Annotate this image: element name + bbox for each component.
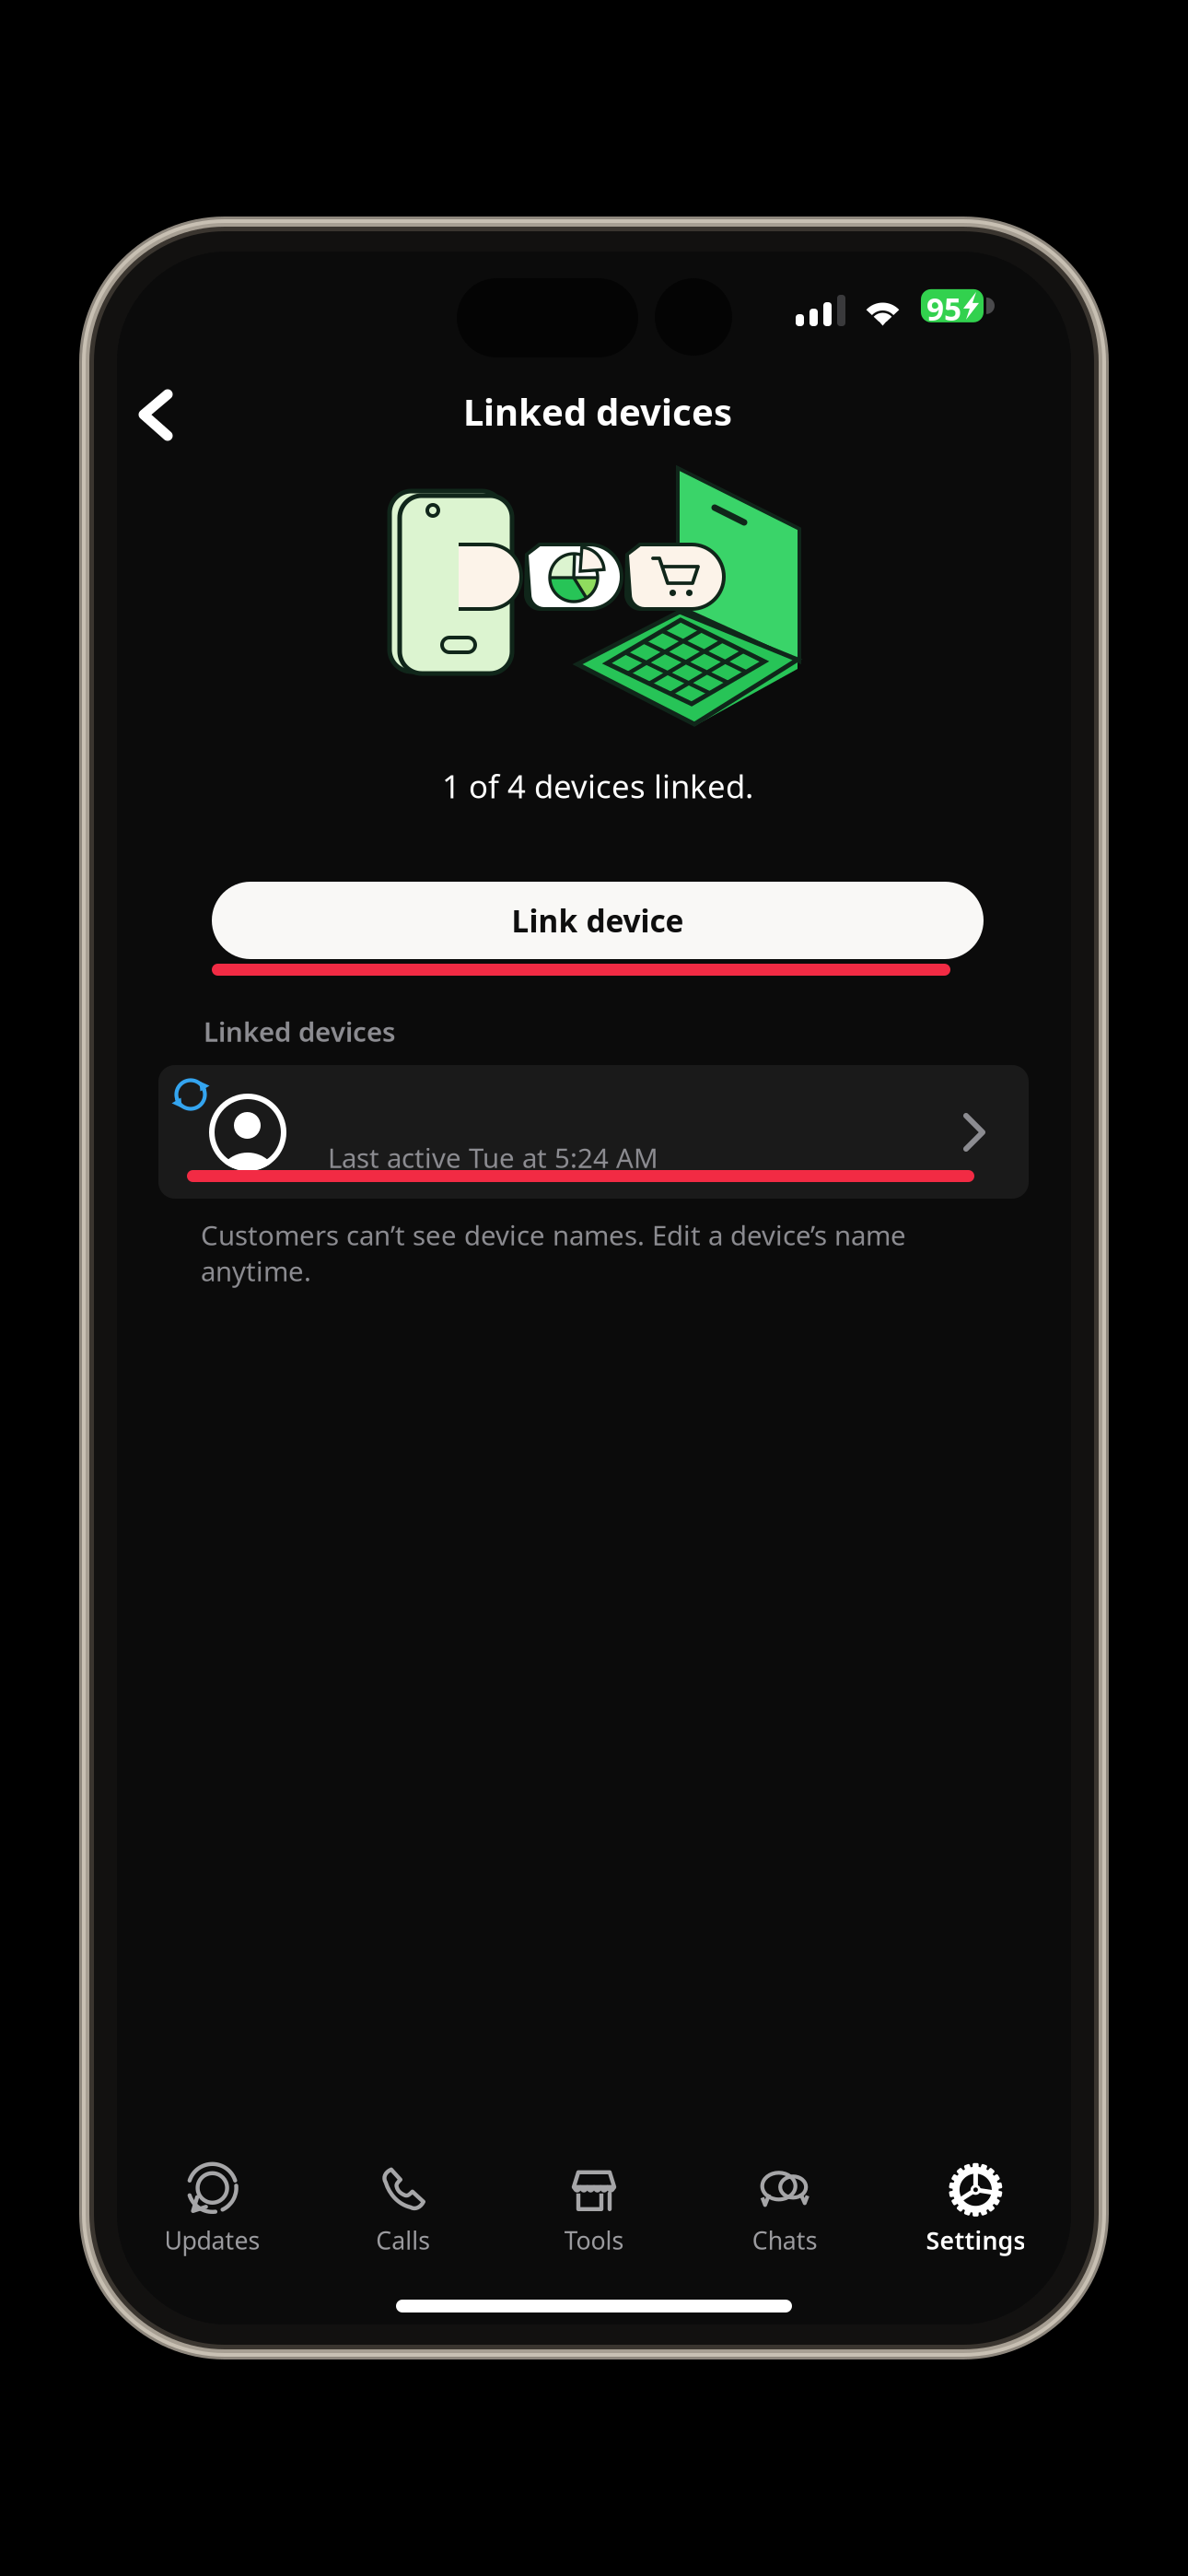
staticText: 1 of 4 devices linked.: [442, 765, 753, 807]
button[interactable]: Back: [119, 372, 204, 457]
staticText: Tools: [564, 2224, 624, 2256]
staticText: Customers can’t see device names. Edit a…: [201, 1217, 906, 1289]
staticText: Last active Tue at 5:24 AM: [328, 1140, 658, 1176]
button[interactable]: Updates: [117, 2154, 308, 2265]
button[interactable]: Calls: [308, 2154, 499, 2265]
staticText: 95: [926, 288, 961, 329]
button[interactable]: Last active Tue at 5:24 AM: [158, 1065, 1029, 1199]
staticText: Link device: [512, 900, 684, 941]
staticText: Calls: [376, 2224, 430, 2256]
button[interactable]: Link device: [212, 882, 984, 959]
staticText: Chats: [752, 2224, 818, 2256]
button[interactable]: Chats: [689, 2154, 880, 2265]
staticText: Linked devices: [463, 387, 732, 436]
staticText: Linked devices: [204, 1013, 395, 1049]
button[interactable]: Settings: [880, 2154, 1071, 2265]
staticText: Settings: [926, 2224, 1025, 2256]
button[interactable]: Tools: [499, 2154, 689, 2265]
staticText: Updates: [164, 2224, 260, 2256]
